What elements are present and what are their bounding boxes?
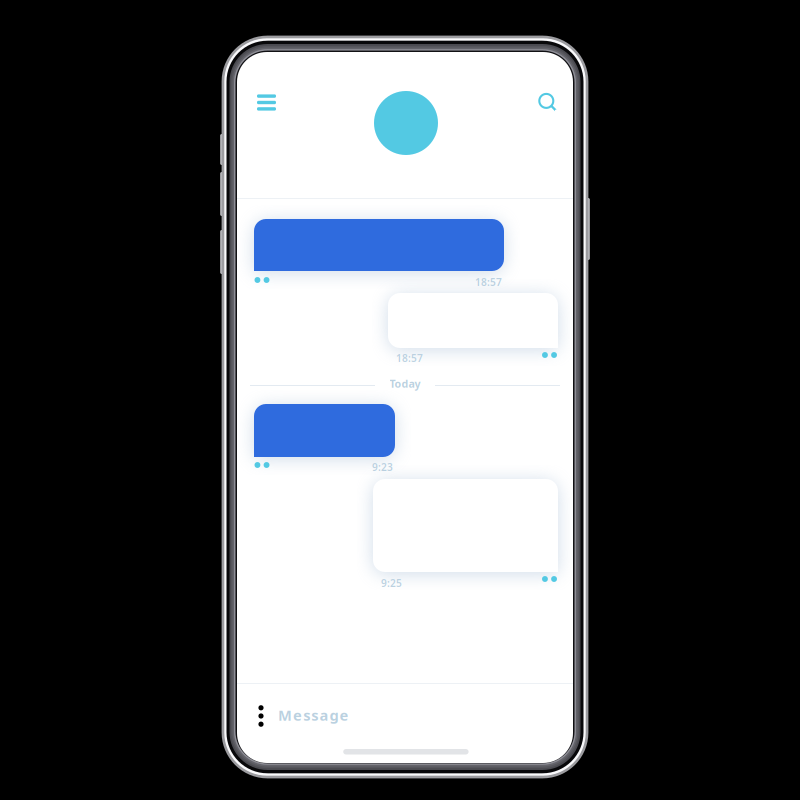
button[interactable]: Menu — [257, 94, 276, 110]
staticText: 9:23 — [372, 460, 393, 474]
staticText: 18:57 — [396, 351, 423, 365]
button[interactable]: Message — [278, 705, 438, 725]
staticText: 9:25 — [381, 576, 402, 590]
button[interactable]: Contact profile — [374, 91, 438, 155]
staticText: Today — [389, 376, 420, 391]
staticText: Message — [278, 705, 349, 725]
staticText: 18:57 — [475, 275, 502, 289]
button[interactable]: Search — [539, 93, 561, 115]
button[interactable]: Attachment options — [258, 705, 264, 727]
